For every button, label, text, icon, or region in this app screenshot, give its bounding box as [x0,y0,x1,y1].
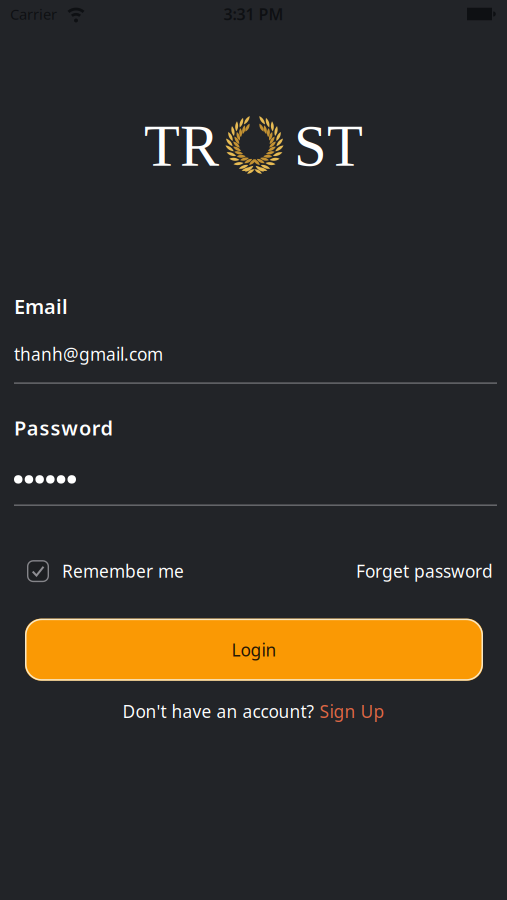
staticText: ST [294,113,363,178]
staticText: TR [144,113,219,178]
staticText: Remember me [62,560,184,583]
staticText: Don't have an account? [122,700,314,723]
staticText: Sign Up [319,700,384,723]
button[interactable]: Sign Up [319,700,384,723]
button[interactable]: Forget password [356,560,493,583]
staticText: Forget password [356,560,493,583]
button[interactable]: Remember me [27,560,184,583]
staticText: Email [14,293,68,320]
staticText: thanh@gmail.com [14,343,163,366]
staticText: Password [14,415,114,441]
staticText: Carrier [10,4,57,24]
staticText: Login [231,638,276,661]
staticText: 3:31 PM [223,3,283,25]
button[interactable]: Login [0,619,507,681]
